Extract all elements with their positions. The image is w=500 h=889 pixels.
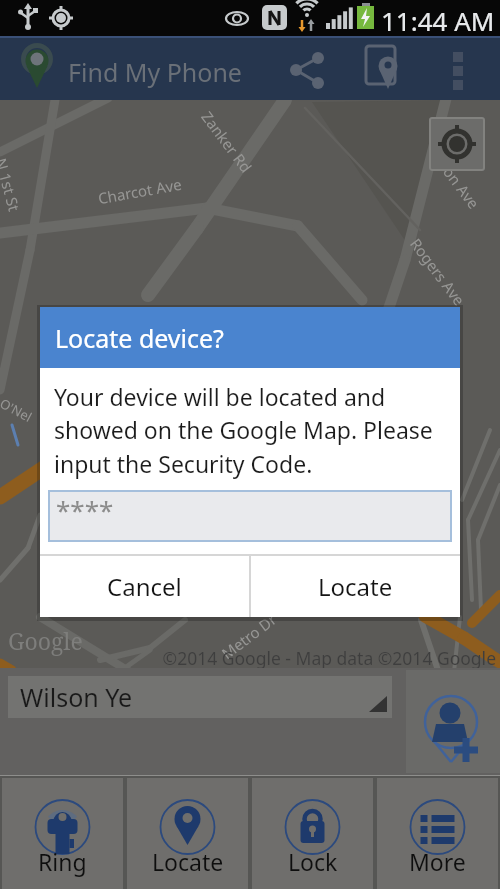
button[interactable]: More — [377, 778, 498, 889]
button[interactable]: Locate — [127, 778, 248, 889]
staticText: Locate — [318, 570, 393, 603]
button[interactable]: Lock — [252, 778, 373, 889]
button[interactable]: Wilson Ye — [8, 676, 392, 718]
staticText: Lock — [288, 846, 338, 877]
staticText: ©2014 Google - Map data ©2014 Google — [0, 646, 496, 670]
staticText: Wilson Ye — [20, 680, 133, 714]
staticText: **** — [56, 492, 114, 527]
button[interactable]: Ring — [2, 778, 123, 889]
staticText: More — [409, 846, 466, 877]
button[interactable] — [429, 117, 485, 171]
staticText: Your device will be located and showed o… — [54, 381, 433, 480]
staticText: Ring — [38, 846, 87, 877]
button[interactable] — [442, 42, 476, 94]
button[interactable] — [406, 670, 500, 773]
staticText: Cancel — [107, 570, 182, 603]
staticText: 11:44 AM — [381, 3, 495, 38]
staticText: Locate — [152, 846, 224, 877]
button[interactable]: **** — [48, 490, 452, 542]
button[interactable]: Locate — [251, 556, 460, 617]
button[interactable] — [356, 42, 408, 94]
button[interactable]: Cancel — [40, 556, 249, 617]
button[interactable] — [282, 46, 330, 94]
staticText: Find My Phone — [68, 55, 242, 89]
staticText: Locate device? — [55, 321, 224, 355]
